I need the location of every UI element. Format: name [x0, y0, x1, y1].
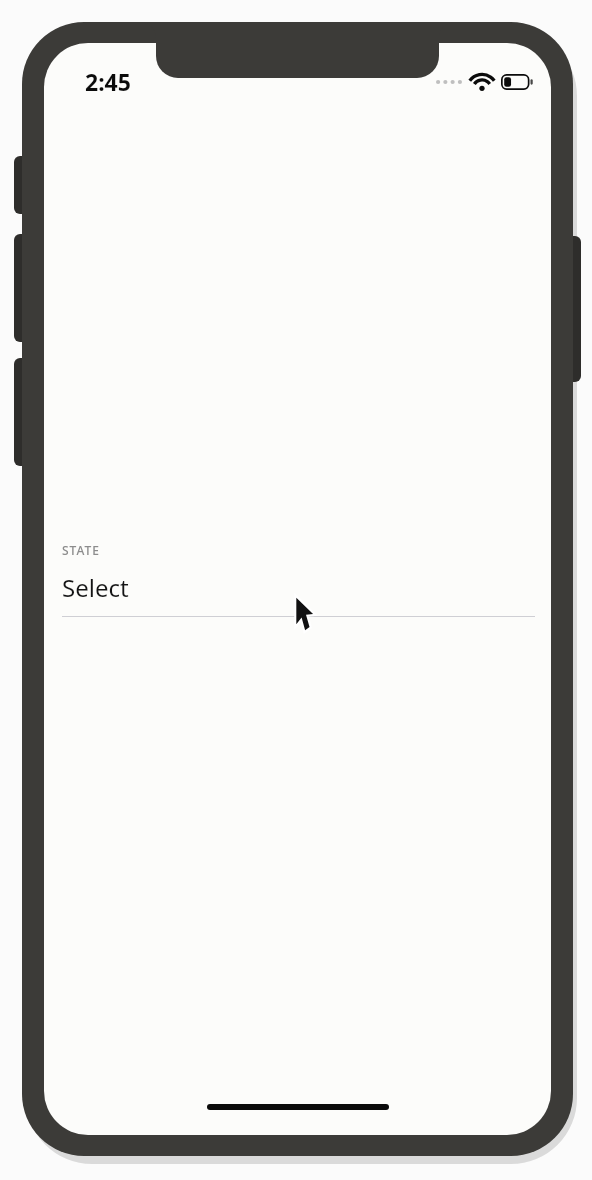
staticText: STATE	[62, 542, 100, 558]
button[interactable]: Select	[44, 571, 551, 617]
staticText: 2:45	[85, 66, 131, 97]
staticText: Select	[62, 571, 129, 604]
other: Home indicator	[207, 1104, 389, 1110]
